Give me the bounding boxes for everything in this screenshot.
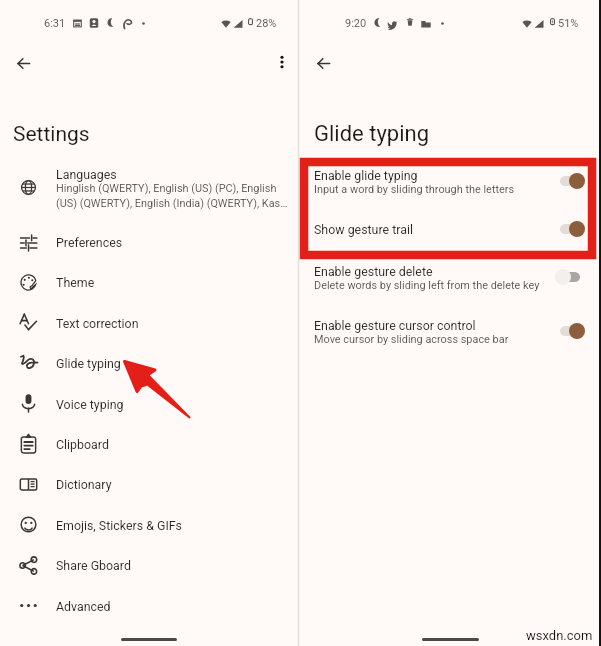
staticText: Enable glide typing [314,168,418,183]
button[interactable] [0,424,297,464]
staticText: Emojis, Stickers & GIFs [56,518,182,533]
button[interactable] [300,213,601,247]
staticText: Voice typing [56,397,124,412]
staticText: Theme [56,275,95,290]
staticText: Glide typing [314,121,430,147]
staticText: Delete words by sliding left from the de… [314,279,540,292]
staticText: Settings [13,122,90,147]
staticText: 51% [558,17,579,30]
staticText: 6:31 [44,17,66,30]
staticText: Text correction [56,316,139,331]
staticText: Preferences [56,235,123,250]
staticText: Show gesture trail [314,222,413,237]
button[interactable]: More options [266,46,298,78]
button[interactable] [0,262,297,302]
staticText: Languages [56,167,117,182]
button[interactable]: Back [3,43,43,83]
staticText: 9:20 [345,17,367,30]
button[interactable] [300,309,601,355]
button[interactable] [0,545,297,585]
staticText: 28% [256,17,277,30]
staticText: Move cursor by sliding across space bar [314,333,509,346]
button[interactable] [0,303,297,343]
button[interactable] [0,586,297,626]
button[interactable] [0,384,297,424]
staticText: Clipboard [56,437,109,452]
button[interactable] [0,222,297,262]
button[interactable] [0,505,297,545]
staticText: Input a word by sliding through the lett… [314,183,515,196]
button[interactable] [0,343,297,383]
button[interactable]: Back [303,43,343,83]
button[interactable] [0,162,297,214]
staticText: Share Gboard [56,558,131,573]
staticText: Enable gesture cursor control [314,318,476,333]
staticText: Enable gesture delete [314,264,433,279]
button[interactable] [300,255,601,301]
staticText: Advanced [56,599,111,614]
button[interactable] [300,159,601,205]
staticText: wsxdn.com [526,628,593,643]
staticText: Dictionary [56,477,112,492]
staticText: Hinglish (QWERTY), English (US) (PC), En… [56,182,288,210]
button[interactable] [0,464,297,504]
staticText: Glide typing [56,356,121,371]
